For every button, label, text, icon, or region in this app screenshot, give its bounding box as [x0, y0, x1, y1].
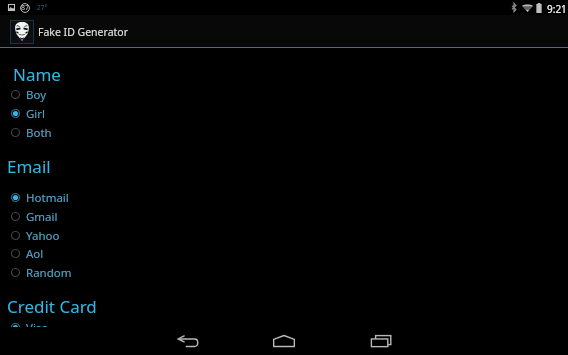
button[interactable]: Visa [0, 318, 568, 337]
staticText: Boy [26, 87, 47, 103]
staticText: Name [13, 63, 61, 85]
button[interactable]: Random [0, 263, 568, 282]
staticText: Hotmail [26, 190, 69, 206]
button[interactable]: Both [0, 123, 568, 142]
button[interactable]: Girl [0, 104, 568, 123]
button[interactable]: Email [7, 155, 51, 177]
staticText: Yahoo [26, 228, 60, 244]
button[interactable]: Name [13, 63, 61, 85]
staticText: Aol [26, 246, 44, 262]
button[interactable]: Home [260, 327, 308, 355]
staticText: Visa [26, 320, 48, 336]
staticText: 87 [21, 3, 30, 13]
button[interactable]: Credit Card [7, 295, 97, 317]
button[interactable]: Gmail [0, 207, 568, 226]
button[interactable]: Aol [0, 244, 568, 263]
button[interactable]: Back [164, 327, 212, 355]
staticText: 9:21 [547, 2, 567, 16]
button[interactable]: Hotmail [0, 188, 568, 207]
button[interactable]: Yahoo [0, 226, 568, 245]
staticText: 27° [37, 3, 48, 12]
staticText: Credit Card [7, 295, 97, 317]
staticText: Gmail [26, 209, 58, 225]
button[interactable]: Boy [0, 85, 568, 104]
staticText: Both [26, 125, 52, 141]
staticText: Girl [26, 106, 46, 122]
staticText: Random [26, 265, 72, 281]
staticText: Fake ID Generator [38, 25, 129, 39]
button[interactable]: Fake ID Generator, up [0, 15, 133, 47]
button[interactable]: Recents [357, 327, 405, 355]
staticText: Email [7, 155, 51, 177]
